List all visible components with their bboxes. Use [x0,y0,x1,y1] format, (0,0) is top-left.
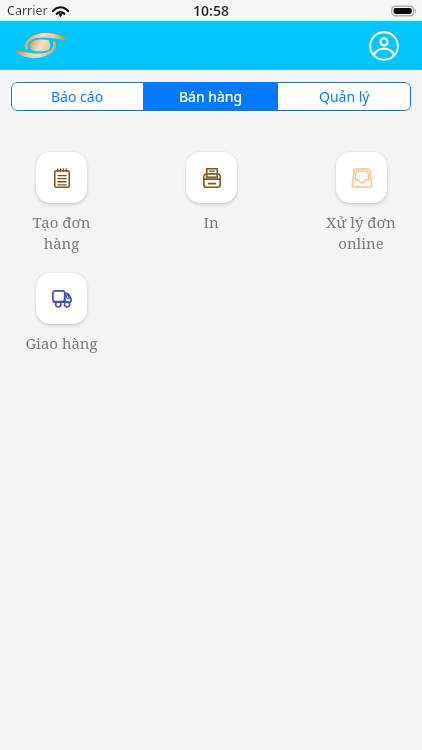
button[interactable]: Giao hàng [0,273,122,353]
staticText: Báo cáo [51,87,104,106]
staticText: Tạo đơn hàng [32,212,91,254]
staticText: Xử lý đơn online [326,212,396,254]
staticText: Quản lý [319,87,370,106]
staticText: Bán hàng [179,87,243,106]
button[interactable]: Logo [15,32,66,59]
button[interactable]: In [150,152,272,232]
button[interactable]: Tạo đơn hàng [0,152,122,254]
staticText: Giao hàng [25,333,98,353]
staticText: 10:58 [193,1,229,20]
button[interactable]: Quản lý [278,82,411,111]
button[interactable]: Xử lý đơn online [300,152,422,254]
button[interactable]: Bán hàng [144,82,277,111]
button[interactable]: Account [369,31,399,61]
staticText: In [203,212,219,232]
button[interactable]: Báo cáo [11,82,143,111]
staticText: Carrier [7,2,48,19]
